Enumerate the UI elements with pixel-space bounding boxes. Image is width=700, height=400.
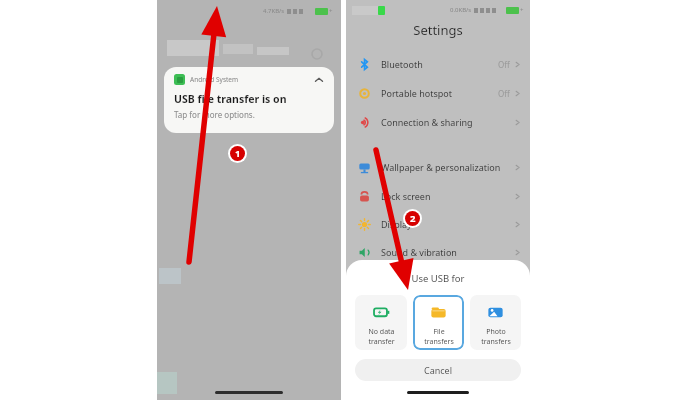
staticText: Off [498, 59, 510, 70]
button[interactable]: Connection & sharing [346, 110, 530, 134]
staticText: Android System [190, 75, 239, 84]
staticText: Tap for more options. [174, 109, 255, 120]
button[interactable]: Bluetooth [346, 52, 530, 76]
staticText: Bluetooth [381, 58, 423, 70]
button[interactable]: Lock screen [346, 184, 530, 208]
button[interactable]: Display [346, 212, 530, 236]
staticText: + [329, 7, 333, 15]
staticText: Sound & vibration [381, 246, 457, 258]
staticText: Lock screen [381, 190, 431, 202]
staticText: Settings [346, 21, 530, 39]
staticText: 1 [235, 147, 241, 160]
staticText: Portable hotspot [381, 87, 452, 99]
staticText: transfers [424, 337, 454, 347]
button[interactable]: Wallpaper & personalization [346, 155, 530, 179]
staticText: 0.0KB/s [450, 6, 472, 14]
staticText: 4.7KB/s [263, 7, 285, 15]
staticText: transfer [368, 337, 395, 347]
staticText: Off [498, 88, 510, 99]
staticText: No data [368, 327, 395, 337]
button[interactable]: Cancel [355, 359, 521, 381]
button[interactable]: Sound & vibration [346, 240, 530, 264]
staticText: File [433, 327, 445, 337]
button[interactable]: No data [355, 295, 407, 350]
staticText: USB file transfer is on [174, 92, 287, 106]
button[interactable]: File [413, 295, 464, 350]
button[interactable]: Android System [164, 67, 334, 133]
staticText: Display [381, 218, 412, 230]
staticText: Use USB for [346, 272, 530, 285]
button[interactable]: Photo [470, 295, 521, 350]
staticText: 2 [410, 212, 416, 225]
staticText: transfers [481, 337, 511, 347]
staticText: + [520, 6, 524, 14]
staticText: Cancel [424, 364, 453, 376]
staticText: Wallpaper & personalization [381, 161, 501, 173]
button[interactable]: Portable hotspot [346, 81, 530, 105]
staticText: Connection & sharing [381, 116, 473, 128]
staticText: Photo [486, 327, 506, 337]
button[interactable]: Settings [309, 46, 325, 62]
